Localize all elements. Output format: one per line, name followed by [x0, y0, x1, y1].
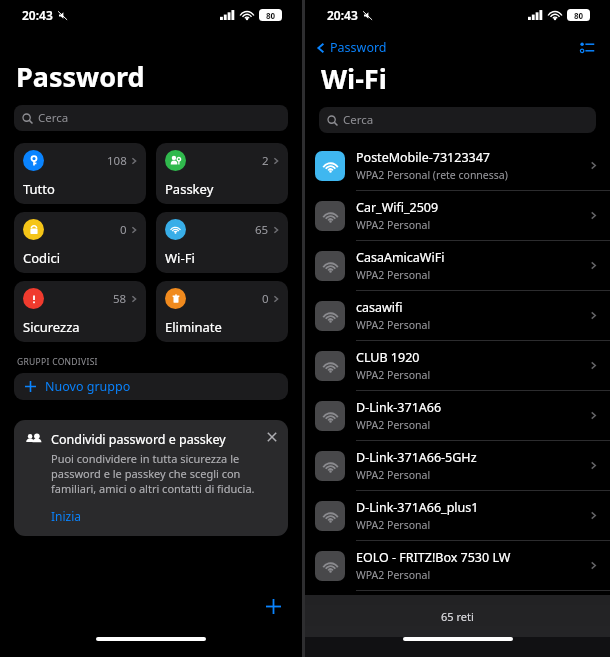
button[interactable]: 0	[14, 212, 146, 273]
button[interactable]: PosteMobile-73123347	[305, 141, 610, 191]
staticText: D-Link-371A66_plus1	[356, 499, 479, 516]
button[interactable]: Filtro	[576, 36, 598, 58]
staticText: 58	[113, 291, 127, 307]
staticText: WPA2 Personal (rete connessa)	[356, 168, 508, 182]
staticText: WPA2 Personal	[356, 518, 431, 532]
button[interactable]: Nuovo gruppo	[14, 373, 288, 400]
staticText: WPA2 Personal	[356, 268, 431, 282]
staticText: Car_Wifi_2509	[356, 199, 439, 216]
staticText: 0	[262, 291, 269, 307]
staticText: 0	[120, 222, 127, 238]
staticText: 108	[107, 153, 127, 169]
button[interactable]: Password	[315, 39, 387, 56]
staticText: Password	[330, 39, 387, 56]
staticText: Cerca	[38, 110, 69, 126]
button[interactable]: EOLO - FRITZ!Box 7530 LW	[305, 541, 610, 591]
staticText: Sicurezza	[23, 318, 80, 336]
staticText: Nuovo gruppo	[45, 378, 131, 395]
staticText: CLUB 1920	[356, 349, 420, 366]
staticText: Tutto	[23, 180, 55, 198]
staticText: PosteMobile-73123347	[356, 149, 490, 166]
button[interactable]: D-Link-371A66-5GHz	[305, 441, 610, 491]
staticText: WPA2 Personal	[356, 468, 431, 482]
button[interactable]: Condividi password e passkey	[14, 420, 288, 536]
staticText: Inizia	[51, 508, 82, 524]
button[interactable]: 0	[156, 281, 288, 342]
button[interactable]: 58	[14, 281, 146, 342]
button[interactable]: D-Link-371A66_plus1	[305, 491, 610, 541]
staticText: 2	[262, 153, 269, 169]
button[interactable]: 108	[14, 143, 146, 204]
staticText: GRUPPI CONDIVISI	[17, 356, 98, 368]
staticText: 65 reti	[441, 609, 474, 624]
staticText: 80	[266, 10, 276, 21]
staticText: 20:43	[327, 7, 358, 23]
staticText: WPA2 Personal	[356, 368, 431, 382]
staticText: WPA2 Personal	[356, 218, 431, 232]
staticText: CasaAmicaWiFi	[356, 249, 445, 266]
staticText: Codici	[23, 249, 61, 267]
button[interactable]: casawifi	[305, 291, 610, 341]
staticText: Wi-Fi	[321, 60, 387, 97]
button[interactable]: CasaAmicaWiFi	[305, 241, 610, 291]
staticText: EOLO - FRITZ!Box 7530 LW	[356, 549, 511, 566]
staticText: casawifi	[356, 299, 403, 316]
button[interactable]: D-Link-371A66	[305, 391, 610, 441]
button[interactable]: Aggiungi	[260, 593, 286, 619]
button[interactable]: Car_Wifi_2509	[305, 191, 610, 241]
staticText: Puoi condividere in tutta sicurezza le p…	[51, 451, 262, 496]
button[interactable]: Cerca	[14, 105, 288, 131]
staticText: Password	[16, 58, 145, 95]
staticText: D-Link-371A66	[356, 399, 442, 416]
staticText: Eliminate	[165, 318, 222, 336]
button[interactable]: Cerca	[319, 107, 596, 133]
staticText: WPA2 Personal	[356, 418, 431, 432]
staticText: Wi-Fi	[165, 249, 195, 267]
staticText: WPA2 Personal	[356, 568, 431, 582]
staticText: Passkey	[165, 180, 214, 198]
staticText: WPA2 Personal	[356, 318, 431, 332]
staticText: 80	[574, 10, 584, 21]
staticText: Cerca	[343, 112, 374, 128]
staticText: Condividi password e passkey	[51, 431, 226, 448]
button[interactable]: 65	[156, 212, 288, 273]
staticText: D-Link-371A66-5GHz	[356, 449, 477, 466]
staticText: 65	[255, 222, 269, 238]
button[interactable]: CLUB 1920	[305, 341, 610, 391]
button[interactable]: Extra	[305, 591, 610, 641]
button[interactable]: 2	[156, 143, 288, 204]
staticText: 20:43	[22, 7, 53, 23]
